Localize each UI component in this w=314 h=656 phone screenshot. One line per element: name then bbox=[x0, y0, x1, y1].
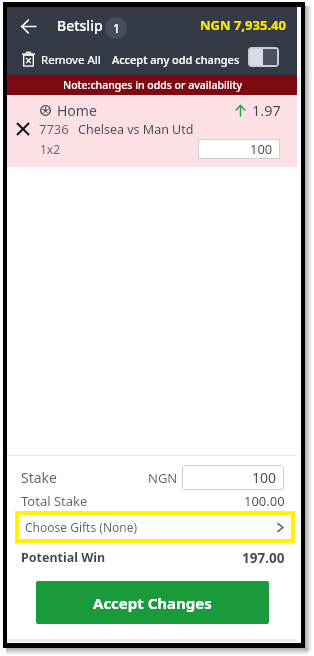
staticText: NGN 7,935.40 bbox=[200, 16, 286, 34]
staticText: Total Stake bbox=[21, 492, 88, 508]
staticText: 100.00 bbox=[244, 492, 285, 508]
staticText: Potential Win bbox=[21, 549, 106, 565]
button[interactable]: Remove bet bbox=[14, 120, 32, 138]
button[interactable]: 100 bbox=[182, 465, 284, 490]
button[interactable]: Choose Gifts (None) bbox=[15, 511, 295, 543]
staticText: Stake bbox=[21, 468, 57, 487]
staticText: Accept any odd changes bbox=[112, 52, 240, 67]
staticText: Choose Gifts (None) bbox=[25, 519, 138, 535]
staticText: Betslip bbox=[57, 16, 103, 35]
staticText: 197.00 bbox=[242, 549, 285, 565]
staticText: 1x2 bbox=[40, 141, 61, 157]
button[interactable]: Remove All bbox=[22, 52, 101, 68]
staticText: 1 bbox=[113, 20, 120, 36]
button[interactable]: Accept any odd changes bbox=[250, 49, 277, 65]
staticText: Note:changes in odds or availability bbox=[63, 78, 242, 92]
staticText: Chelsea vs Man Utd bbox=[78, 121, 194, 138]
button[interactable]: Back bbox=[13, 11, 43, 41]
staticText: Accept Changes bbox=[93, 593, 212, 613]
staticText: 100 bbox=[252, 468, 277, 487]
staticText: Remove All bbox=[41, 52, 101, 68]
staticText: 100 bbox=[250, 140, 273, 158]
staticText: 1.97 bbox=[252, 100, 281, 120]
button[interactable]: 100 bbox=[198, 139, 280, 159]
staticText: NGN bbox=[148, 469, 178, 487]
staticText: 7736 bbox=[39, 120, 69, 138]
staticText: Home bbox=[57, 101, 97, 120]
button[interactable]: Accept Changes bbox=[36, 581, 269, 624]
